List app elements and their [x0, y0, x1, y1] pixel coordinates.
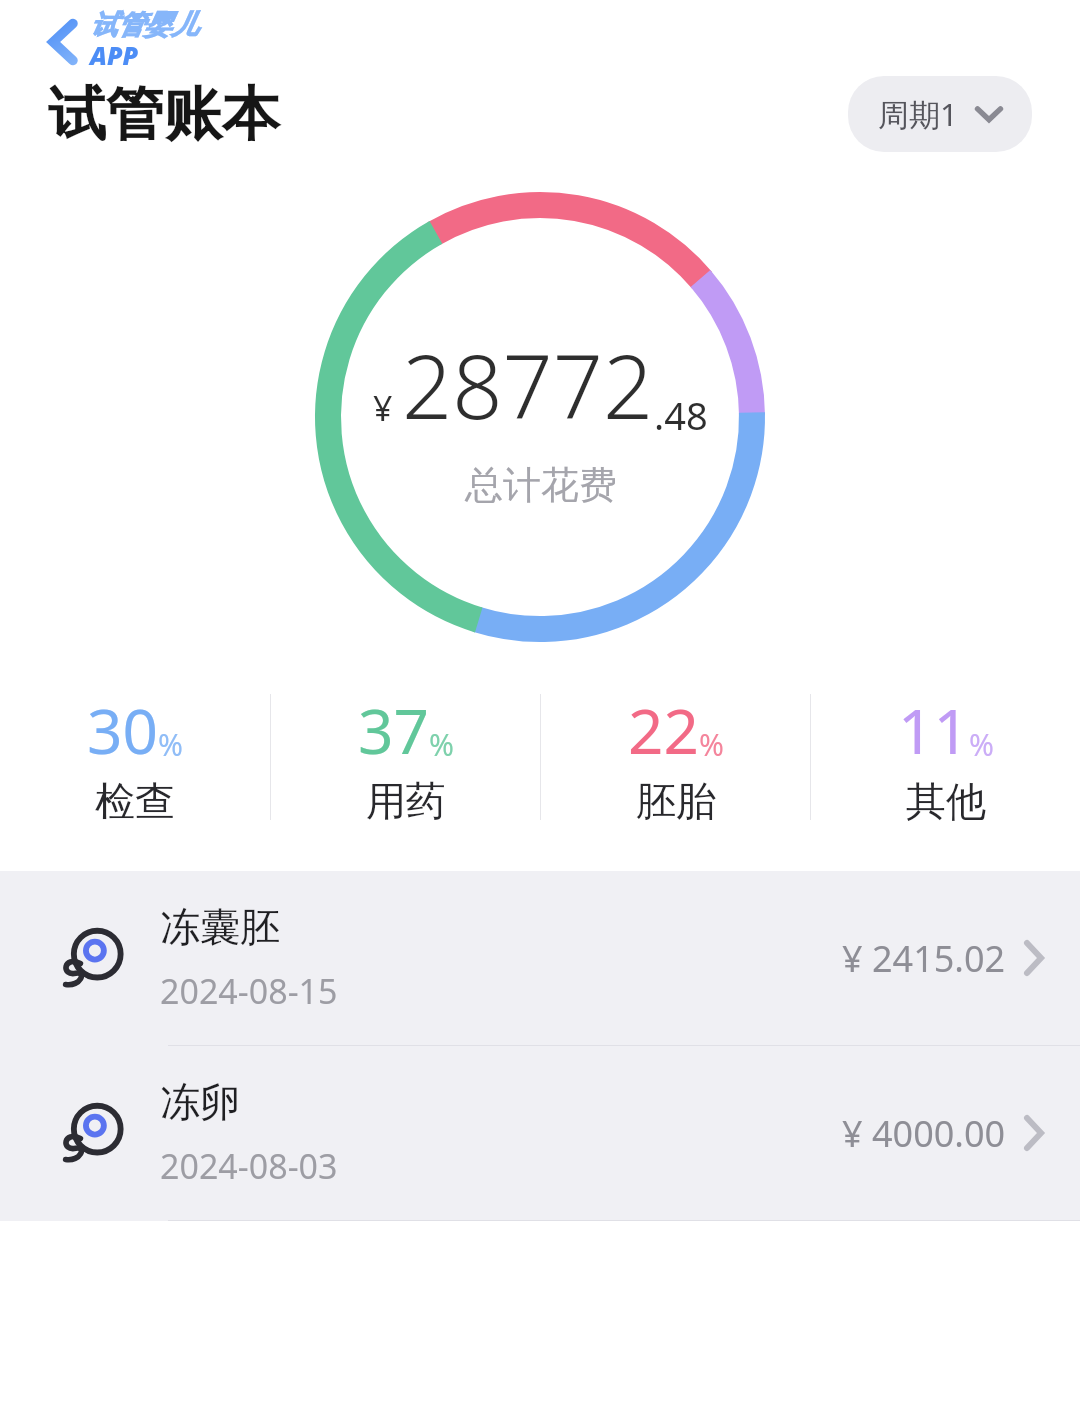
staticText: ¥ 2415.02 — [842, 934, 1006, 983]
staticText: % — [158, 724, 183, 765]
other: Open detail — [1024, 941, 1044, 975]
staticText: % — [429, 724, 454, 765]
staticText: APP — [90, 38, 139, 72]
staticText: 总计花费 — [465, 461, 617, 509]
staticText: 2024-08-15 — [160, 968, 338, 1014]
staticText: 2024-08-03 — [160, 1143, 338, 1189]
button[interactable]: Back — [48, 8, 204, 76]
button[interactable]: 冻卵 — [0, 1046, 1080, 1220]
staticText: .48 — [654, 389, 708, 441]
button[interactable]: 37 — [271, 688, 540, 826]
other: Open detail — [1024, 1116, 1044, 1150]
staticText: 胚胎 — [636, 776, 716, 826]
button[interactable]: 11 — [811, 688, 1080, 826]
staticText: % — [699, 724, 724, 765]
staticText: 37 — [358, 688, 429, 772]
staticText: 22 — [628, 688, 699, 772]
staticText: 28772 — [402, 325, 654, 445]
staticText: 试管婴儿 — [90, 8, 198, 42]
button[interactable]: 周期1 — [848, 76, 1032, 152]
staticText: 11 — [898, 688, 969, 772]
staticText: 用药 — [366, 776, 446, 826]
button[interactable]: 30 — [0, 688, 270, 826]
staticText: % — [969, 724, 994, 765]
staticText: 冻囊胚 — [160, 902, 280, 952]
staticText: 其他 — [906, 776, 986, 826]
staticText: ¥ 4000.00 — [842, 1109, 1006, 1158]
staticText: 检查 — [95, 776, 175, 826]
staticText: 冻卵 — [160, 1077, 240, 1127]
staticText: 30 — [87, 688, 158, 772]
staticText: 试管账本 — [48, 78, 280, 151]
button[interactable]: 22 — [541, 688, 810, 826]
button[interactable]: 冻囊胚 — [0, 871, 1080, 1045]
staticText: ¥ — [373, 385, 393, 431]
staticText: 周期1 — [878, 93, 958, 135]
